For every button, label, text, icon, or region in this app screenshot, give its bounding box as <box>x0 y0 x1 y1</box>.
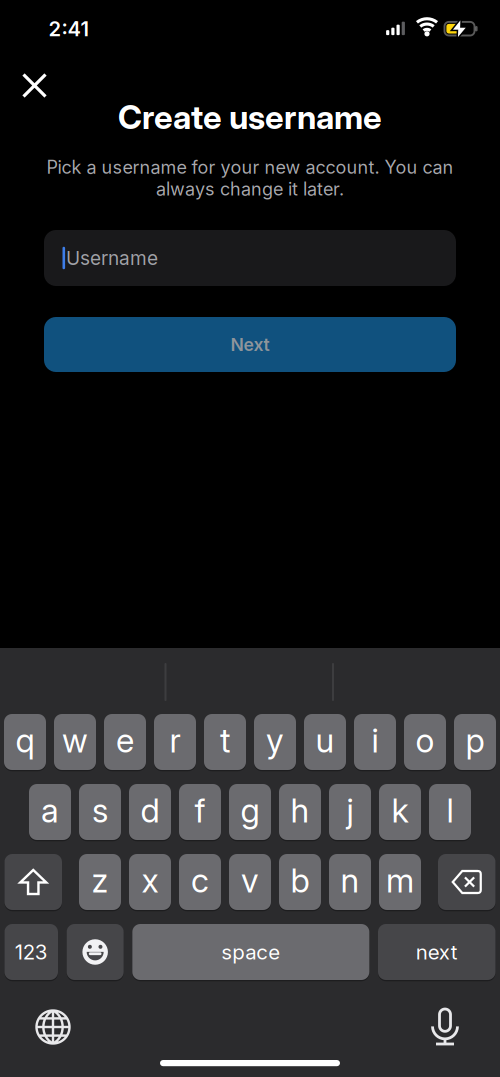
button[interactable]: o <box>404 714 446 770</box>
staticText: space <box>221 940 280 964</box>
button[interactable]: w <box>54 714 96 770</box>
button[interactable]: y <box>254 714 296 770</box>
staticText: 2:41 <box>48 17 89 41</box>
button[interactable]: v <box>229 854 271 910</box>
staticText: h <box>290 790 309 830</box>
button[interactable]: r <box>154 714 196 770</box>
staticText: Create username <box>118 97 382 137</box>
button[interactable]: g <box>229 784 271 840</box>
staticText: t <box>220 720 230 760</box>
staticText: i <box>371 720 378 760</box>
button[interactable]: t <box>204 714 246 770</box>
button[interactable]: next <box>378 924 495 980</box>
button[interactable]: Shift <box>4 854 62 910</box>
staticText: Next <box>230 334 269 355</box>
button[interactable]: Numbers <box>4 924 58 980</box>
button[interactable]: Close <box>17 68 51 102</box>
button[interactable]: space <box>132 924 369 980</box>
staticText: j <box>346 790 353 830</box>
button[interactable]: p <box>454 714 496 770</box>
button[interactable]: c <box>179 854 221 910</box>
button[interactable]: Next keyboard <box>31 1005 74 1048</box>
staticText: d <box>140 790 159 830</box>
staticText: u <box>315 720 334 760</box>
staticText: r <box>169 720 180 760</box>
staticText: g <box>240 790 259 830</box>
button[interactable]: Dictate <box>426 1003 463 1051</box>
staticText: 123 <box>15 940 48 964</box>
button[interactable]: l <box>429 784 471 840</box>
button[interactable]: z <box>79 854 121 910</box>
staticText: a <box>41 790 59 830</box>
staticText: f <box>194 790 205 830</box>
button[interactable]: i <box>354 714 396 770</box>
staticText: e <box>116 720 134 760</box>
staticText: l <box>446 790 453 830</box>
staticText: m <box>386 860 414 900</box>
button[interactable]: h <box>279 784 321 840</box>
button[interactable]: x <box>129 854 171 910</box>
staticText: n <box>340 860 359 900</box>
staticText: p <box>465 720 484 760</box>
staticText: v <box>241 860 259 900</box>
button[interactable]: s <box>79 784 121 840</box>
button[interactable]: n <box>329 854 371 910</box>
button[interactable]: d <box>129 784 171 840</box>
staticText: Username <box>66 246 158 270</box>
staticText: next <box>416 940 458 964</box>
button[interactable]: u <box>304 714 346 770</box>
button[interactable]: b <box>279 854 321 910</box>
staticText: y <box>266 720 284 760</box>
button[interactable]: e <box>104 714 146 770</box>
staticText: x <box>141 860 158 900</box>
staticText: always change it later. <box>156 178 344 200</box>
staticText: Pick a username for your new account. Yo… <box>46 156 453 178</box>
button[interactable]: Username <box>44 230 456 286</box>
button[interactable]: Delete <box>438 854 495 910</box>
staticText: z <box>91 860 108 900</box>
button[interactable]: f <box>179 784 221 840</box>
staticText: c <box>191 860 209 900</box>
staticText: w <box>62 720 88 760</box>
button[interactable]: q <box>4 714 46 770</box>
button[interactable]: Emoji <box>67 924 124 980</box>
button[interactable]: j <box>329 784 371 840</box>
button[interactable]: k <box>379 784 421 840</box>
staticText: k <box>391 790 408 830</box>
button[interactable]: a <box>29 784 71 840</box>
button[interactable]: m <box>379 854 421 910</box>
staticText: q <box>15 720 34 760</box>
staticText: b <box>290 860 309 900</box>
staticText: s <box>92 790 108 830</box>
button[interactable]: Next <box>44 317 456 372</box>
staticText: o <box>415 720 434 760</box>
